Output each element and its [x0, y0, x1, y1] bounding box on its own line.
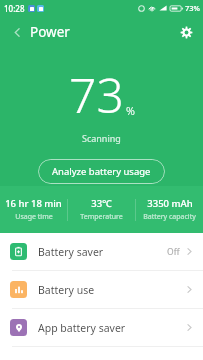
- staticText: Battery capacity: [143, 212, 196, 222]
- staticText: 73: [69, 62, 124, 127]
- button[interactable]: Settings: [176, 22, 196, 42]
- button[interactable]: Back: [8, 23, 26, 41]
- staticText: Usage time: [15, 212, 53, 222]
- staticText: Battery saver: [38, 245, 104, 259]
- staticText: Scanning: [82, 132, 121, 144]
- button[interactable]: Analyze battery usage: [38, 159, 165, 184]
- button[interactable]: Battery use: [0, 271, 203, 308]
- staticText: 73%: [185, 3, 200, 13]
- staticText: 33℃: [91, 197, 112, 210]
- staticText: 3350 mAh: [147, 197, 193, 210]
- staticText: %: [126, 103, 135, 118]
- staticText: Battery use: [38, 283, 95, 297]
- button[interactable]: App battery saver: [0, 309, 203, 346]
- staticText: Off: [167, 246, 180, 258]
- staticText: Temperature: [80, 212, 123, 222]
- staticText: 16 hr 18 min: [5, 197, 62, 210]
- staticText: Analyze battery usage: [52, 165, 151, 178]
- staticText: 10:28: [4, 3, 25, 14]
- button[interactable]: Battery saver: [0, 233, 203, 270]
- staticText: Power: [30, 23, 70, 41]
- staticText: App battery saver: [38, 321, 126, 335]
